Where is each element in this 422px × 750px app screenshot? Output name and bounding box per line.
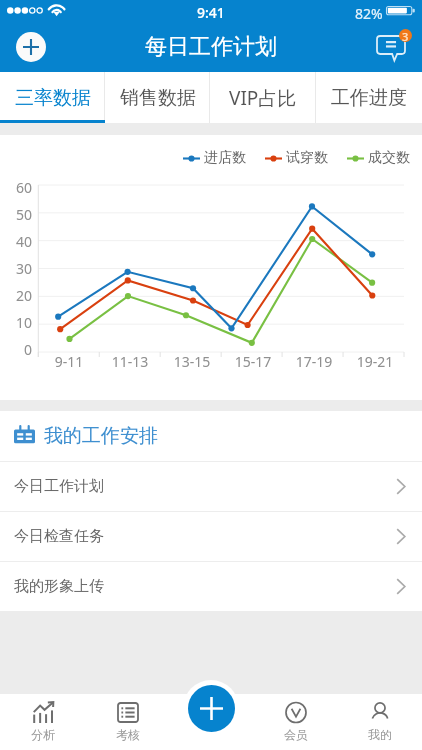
staticText: 9-11 <box>39 352 99 371</box>
staticText: 成交数 <box>368 149 410 167</box>
staticText: 3 <box>402 29 409 42</box>
staticText: 50 <box>0 205 32 224</box>
staticText: 15-17 <box>223 352 283 371</box>
button[interactable]: 我的 <box>338 694 422 750</box>
staticText: 20 <box>0 286 32 305</box>
staticText: 13-15 <box>162 352 222 371</box>
button[interactable]: Add <box>188 685 235 732</box>
staticText: 82% <box>355 4 383 23</box>
staticText: 三率数据 <box>15 86 91 110</box>
button[interactable]: 工作进度 <box>316 72 422 123</box>
staticText: 今日工作计划 <box>14 477 104 496</box>
button[interactable]: VIP占比 <box>210 72 316 123</box>
button[interactable]: 会员 <box>254 694 338 750</box>
staticText: 我的 <box>368 727 392 742</box>
staticText: 会员 <box>284 727 308 742</box>
staticText: 我的形象上传 <box>14 577 104 596</box>
button[interactable]: Add <box>16 32 46 62</box>
staticText: 考核 <box>116 727 140 742</box>
button[interactable]: 销售数据 <box>105 72 210 123</box>
staticText: 9:41 <box>197 3 225 22</box>
staticText: 11-13 <box>100 352 160 371</box>
button[interactable]: 今日检查任务 <box>0 512 422 561</box>
staticText: 17-19 <box>284 352 344 371</box>
staticText: 10 <box>0 313 32 332</box>
staticText: 我的工作安排 <box>44 424 158 448</box>
staticText: 今日检查任务 <box>14 527 104 546</box>
button[interactable]: 三率数据 <box>0 72 105 123</box>
staticText: 0 <box>0 340 32 359</box>
staticText: 工作进度 <box>331 86 407 110</box>
button[interactable]: 分析 <box>0 694 85 750</box>
staticText: 60 <box>0 178 32 197</box>
button[interactable]: 今日工作计划 <box>0 462 422 511</box>
staticText: 分析 <box>31 727 55 742</box>
button[interactable]: 考核 <box>85 694 170 750</box>
button[interactable]: 我的形象上传 <box>0 562 422 611</box>
button[interactable]: Messages <box>374 26 416 68</box>
staticText: 进店数 <box>204 149 246 167</box>
staticText: 每日工作计划 <box>145 33 277 61</box>
staticText: 40 <box>0 232 32 251</box>
staticText: 试穿数 <box>286 149 328 167</box>
staticText: 销售数据 <box>120 86 196 110</box>
staticText: 30 <box>0 259 32 278</box>
staticText: 19-21 <box>345 352 405 371</box>
staticText: VIP占比 <box>229 85 297 111</box>
